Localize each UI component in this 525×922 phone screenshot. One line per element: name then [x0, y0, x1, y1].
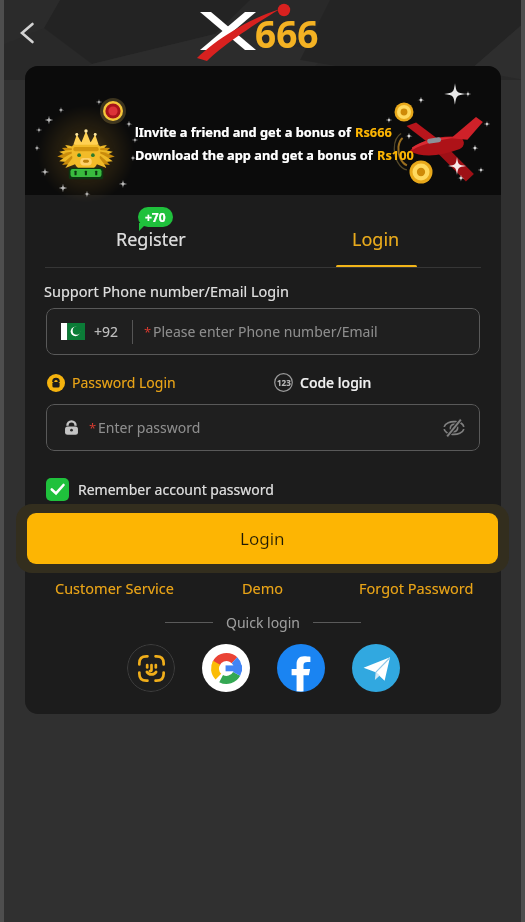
- button[interactable]: Show password: [436, 410, 472, 446]
- staticText: Support Phone number/Email Login: [44, 281, 289, 301]
- staticText: Quick login: [226, 613, 300, 632]
- button[interactable]: Login: [276, 200, 476, 266]
- staticText: Code login: [300, 373, 372, 392]
- button[interactable]: Login: [27, 513, 498, 564]
- staticText: Login: [240, 527, 285, 550]
- staticText: Please enter Phone number/Email: [153, 322, 378, 341]
- button[interactable]: Telegram login: [352, 644, 400, 692]
- button[interactable]: Back: [5, 11, 49, 55]
- button[interactable]: Facebook login: [277, 644, 325, 692]
- staticText: 666: [255, 8, 319, 58]
- staticText: Rs666: [355, 123, 392, 140]
- button[interactable]: Customer Service: [55, 578, 174, 598]
- staticText: *: [144, 323, 152, 341]
- staticText: Register: [116, 227, 186, 252]
- button[interactable]: 123: [274, 373, 372, 392]
- button[interactable]: +92: [46, 308, 480, 355]
- button[interactable]: Remember account password: [46, 478, 274, 501]
- button[interactable]: Forgot Password: [359, 578, 474, 598]
- button[interactable]: Google login: [202, 644, 250, 692]
- staticText: Remember account password: [78, 480, 274, 499]
- button[interactable]: Demo: [242, 578, 284, 598]
- button[interactable]: *: [46, 404, 480, 451]
- button[interactable]: Face ID login: [127, 644, 175, 692]
- button[interactable]: Password Login: [47, 373, 176, 392]
- staticText: +92: [94, 322, 119, 341]
- staticText: Enter password: [98, 418, 201, 437]
- staticText: Rs100: [377, 146, 414, 163]
- staticText: lInvite a friend and get a bonus of: [135, 123, 355, 140]
- staticText: *: [89, 419, 97, 437]
- staticText: Download the app and get a bonus of: [135, 146, 377, 163]
- button[interactable]: Register: [51, 200, 251, 266]
- staticText: Login: [352, 227, 400, 252]
- staticText: +70: [145, 209, 166, 225]
- staticText: 123: [277, 377, 291, 388]
- staticText: Password Login: [72, 373, 176, 392]
